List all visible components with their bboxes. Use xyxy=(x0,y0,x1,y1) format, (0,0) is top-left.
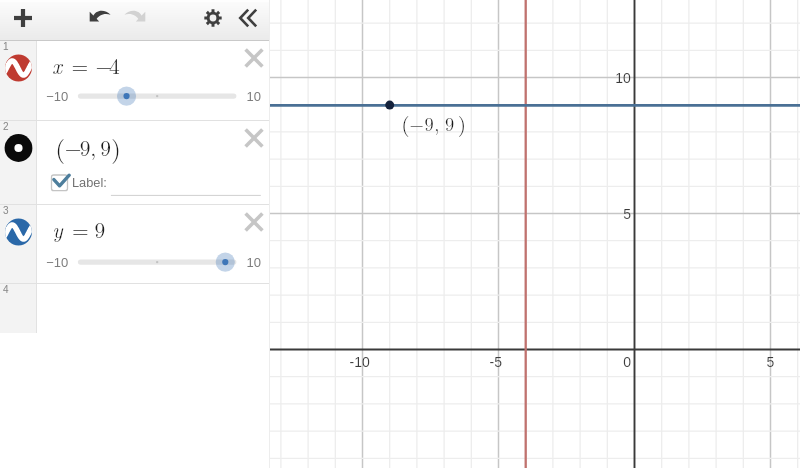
staticText: 1 xyxy=(3,41,9,52)
staticText: 3 xyxy=(3,205,9,216)
button[interactable]: Collapse panel xyxy=(232,2,264,34)
button[interactable]: Delete expression xyxy=(242,46,266,70)
button[interactable]: 2 xyxy=(0,121,270,204)
button[interactable]: Delete expression xyxy=(242,210,266,234)
button[interactable]: Settings xyxy=(197,2,229,34)
staticText: 4 xyxy=(3,284,9,295)
button[interactable]: Add expression xyxy=(6,1,40,35)
button[interactable]: Delete expression xyxy=(242,126,266,150)
button[interactable]: 1 xyxy=(0,41,270,120)
button[interactable]: 3 xyxy=(0,205,270,283)
staticText: 2 xyxy=(3,121,9,132)
button[interactable]: Redo xyxy=(119,1,151,33)
button[interactable]: 4 xyxy=(0,284,270,333)
button[interactable]: Undo xyxy=(84,1,116,33)
